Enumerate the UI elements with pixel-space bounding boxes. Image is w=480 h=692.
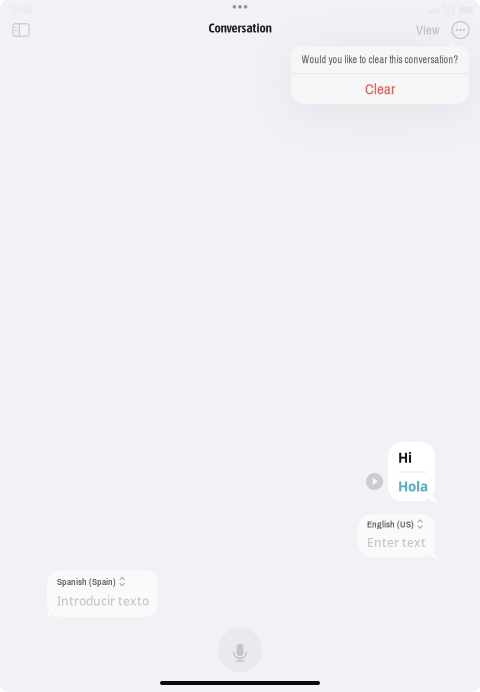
- staticText: Conversation: [208, 20, 271, 35]
- staticText: Hola: [398, 477, 428, 495]
- staticText: English (US): [367, 518, 414, 530]
- button[interactable]: Show sidebar: [7, 18, 35, 42]
- button[interactable]: English (US): [358, 514, 435, 557]
- staticText: Hi: [398, 449, 412, 466]
- button[interactable]: Multitasking controls: [221, 0, 259, 14]
- staticText: View: [416, 21, 439, 39]
- staticText: Enter text: [367, 534, 426, 550]
- button[interactable]: Start listening: [218, 628, 262, 672]
- staticText: Spanish (Spain): [57, 575, 116, 588]
- button[interactable]: Spanish (Spain): [47, 570, 158, 617]
- staticText: Introducir texto: [57, 593, 149, 609]
- button[interactable]: Clear: [291, 74, 469, 104]
- staticText: Would you like to clear this conversatio…: [301, 53, 458, 66]
- staticText: Clear: [365, 79, 395, 99]
- button[interactable]: Play translation: [366, 473, 383, 490]
- button[interactable]: More options: [450, 19, 471, 40]
- button[interactable]: View: [411, 16, 444, 44]
